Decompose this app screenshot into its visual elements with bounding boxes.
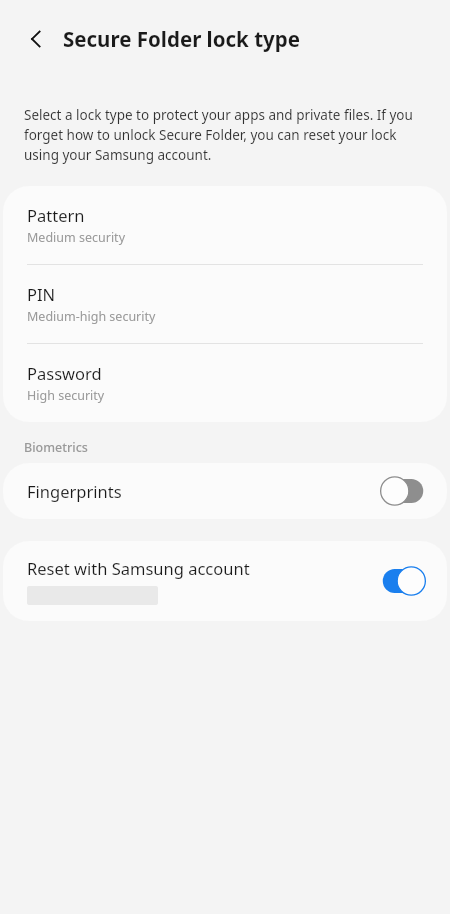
staticText: High security bbox=[27, 387, 105, 404]
staticText: PIN bbox=[27, 283, 56, 305]
button[interactable]: Pattern bbox=[3, 186, 447, 264]
staticText: Select a lock type to protect your apps … bbox=[24, 106, 430, 164]
staticText: Password bbox=[27, 362, 102, 384]
staticText: Secure Folder lock type bbox=[63, 25, 300, 53]
staticText: Fingerprints bbox=[27, 480, 122, 502]
button[interactable]: On bbox=[380, 566, 426, 596]
button[interactable]: Reset with Samsung account bbox=[3, 541, 447, 621]
staticText: Reset with Samsung account bbox=[27, 557, 250, 579]
staticText: Medium security bbox=[27, 229, 126, 246]
button[interactable]: Off bbox=[380, 476, 426, 506]
staticText: Biometrics bbox=[24, 439, 88, 456]
staticText: Medium-high security bbox=[27, 308, 156, 325]
staticText: Pattern bbox=[27, 204, 85, 226]
button[interactable]: Back bbox=[16, 19, 56, 59]
button[interactable]: Password bbox=[3, 344, 447, 422]
button[interactable]: Fingerprints bbox=[3, 463, 447, 519]
button[interactable]: PIN bbox=[3, 265, 447, 343]
